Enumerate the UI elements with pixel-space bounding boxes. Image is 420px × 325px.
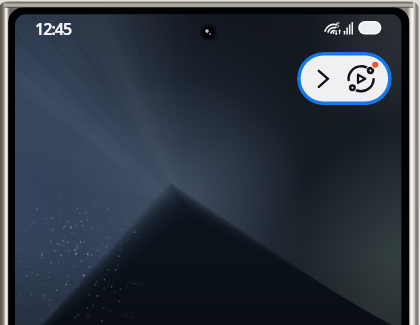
staticText: 12:45 <box>35 18 72 40</box>
button[interactable]: Open media panel <box>297 52 392 105</box>
